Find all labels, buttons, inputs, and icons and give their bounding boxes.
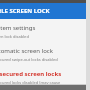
button[interactable]: System settings (0, 22, 75, 39)
button[interactable]: Automatic screen lock (0, 45, 75, 62)
staticText: unsecured locks disabled (may cause misb… (0, 80, 75, 84)
staticText: Unsecured screen locks (0, 70, 62, 78)
staticText: screen lock disabled (0, 34, 29, 39)
button[interactable]: Unsecured screen locks (0, 68, 75, 84)
staticText: System settings (0, 24, 36, 32)
staticText: unsecured swipe-out locks disabled (0, 57, 58, 62)
staticText: DISABLE SCREEN LOCK (0, 7, 50, 15)
staticText: Automatic screen lock (0, 47, 53, 55)
button[interactable]: DISABLE SCREEN LOCK (0, 3, 86, 19)
